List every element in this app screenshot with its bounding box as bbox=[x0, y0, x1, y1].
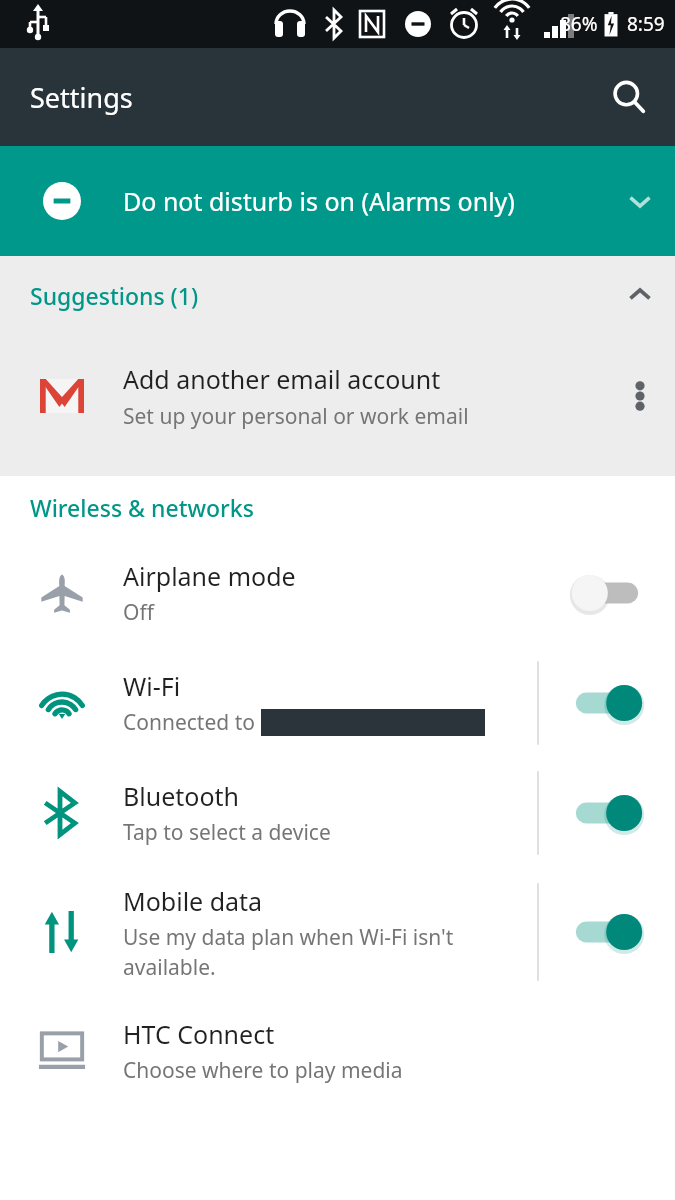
staticText: Wi-Fi bbox=[123, 669, 181, 703]
staticText: Use my data plan when Wi-Fi isn't availa… bbox=[123, 923, 526, 981]
button[interactable]: Bluetooth toggle bbox=[557, 777, 657, 849]
button[interactable]: Mobile data toggle bbox=[557, 896, 657, 968]
staticText: Wireless & networks bbox=[30, 492, 254, 523]
button[interactable]: Add another email account bbox=[0, 334, 675, 458]
staticText: Tap to select a device bbox=[123, 818, 331, 847]
staticText: 8:59 bbox=[627, 11, 665, 37]
button[interactable]: HTC Connect bbox=[0, 996, 675, 1106]
staticText: HTC Connect bbox=[123, 1017, 275, 1051]
staticText: Bluetooth bbox=[123, 779, 240, 813]
button[interactable]: Wi-Fi bbox=[0, 648, 675, 758]
staticText: Mobile data bbox=[123, 884, 263, 918]
button[interactable]: Do not disturb is on (Alarms only) bbox=[0, 146, 675, 256]
button[interactable]: Mobile data bbox=[0, 868, 675, 996]
staticText: Connected to bbox=[123, 708, 261, 737]
staticText: Choose where to play media bbox=[123, 1056, 403, 1085]
staticText: 86% bbox=[560, 11, 598, 37]
staticText: Airplane mode bbox=[123, 559, 296, 593]
button[interactable]: Airplane mode bbox=[0, 538, 675, 648]
button[interactable]: Collapse suggestions bbox=[605, 256, 675, 334]
button[interactable]: Airplane mode toggle bbox=[557, 557, 657, 629]
staticText: Add another email account bbox=[123, 362, 441, 396]
staticText: Settings bbox=[30, 79, 133, 116]
staticText: Do not disturb is on (Alarms only) bbox=[123, 184, 593, 218]
staticText: Suggestions (1) bbox=[30, 280, 605, 311]
button[interactable]: Wi-Fi toggle bbox=[557, 667, 657, 739]
button[interactable]: Suggestions (1) bbox=[0, 256, 675, 334]
button[interactable]: Expand bbox=[605, 146, 675, 256]
staticText: Set up your personal or work email bbox=[123, 402, 469, 431]
staticText: Off bbox=[123, 598, 154, 627]
button[interactable]: Bluetooth bbox=[0, 758, 675, 868]
button[interactable]: Search bbox=[603, 71, 655, 123]
button[interactable]: More options bbox=[605, 334, 675, 458]
